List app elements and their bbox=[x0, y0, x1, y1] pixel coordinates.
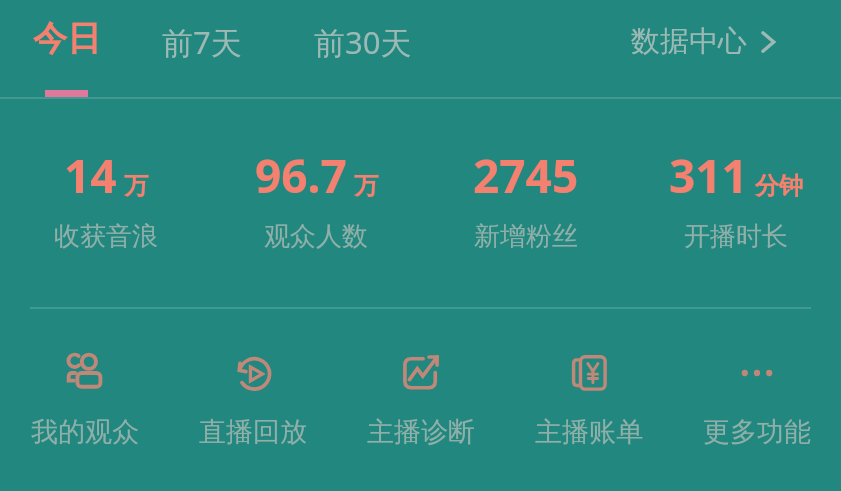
staticText: 观众人数 bbox=[264, 220, 368, 253]
other: 主播账单 bbox=[566, 350, 612, 396]
staticText: 311 bbox=[669, 144, 748, 207]
staticText: 万 bbox=[354, 171, 378, 201]
staticText: 今日 bbox=[33, 17, 101, 60]
button[interactable]: 我的观众 bbox=[0, 347, 169, 452]
staticText: 主播诊断 bbox=[367, 415, 475, 449]
button[interactable]: 前30天 bbox=[309, 17, 417, 67]
staticText: 直播回放 bbox=[199, 415, 307, 449]
staticText: 14 bbox=[64, 144, 117, 207]
staticText: 数据中心 bbox=[631, 23, 747, 60]
staticText: 我的观众 bbox=[31, 415, 139, 449]
staticText: 96.7 bbox=[255, 144, 347, 207]
button[interactable]: 直播回放 bbox=[169, 347, 337, 452]
staticText: 新增粉丝 bbox=[474, 220, 578, 253]
staticText: 万 bbox=[124, 171, 148, 201]
button[interactable]: 14 bbox=[0, 141, 211, 256]
button[interactable]: 主播账单 bbox=[505, 347, 673, 452]
button[interactable]: 前7天 bbox=[157, 17, 247, 67]
staticText: 2745 bbox=[473, 144, 579, 207]
button[interactable]: 311 bbox=[631, 141, 841, 256]
other: 我的观众 bbox=[62, 350, 108, 396]
staticText: 分钟 bbox=[755, 171, 803, 201]
staticText: 主播账单 bbox=[535, 415, 643, 449]
button[interactable]: 今日 bbox=[28, 13, 106, 64]
other: 更多功能 bbox=[734, 350, 780, 396]
staticText: 更多功能 bbox=[703, 415, 811, 449]
button[interactable]: 2745 bbox=[421, 141, 631, 256]
staticText: 开播时长 bbox=[684, 220, 788, 253]
button[interactable]: 主播诊断 bbox=[337, 347, 505, 452]
staticText: 前30天 bbox=[314, 21, 412, 63]
other: 直播回放 bbox=[230, 350, 276, 396]
button[interactable]: 96.7 bbox=[211, 141, 421, 256]
other: 主播诊断 bbox=[398, 350, 444, 396]
button[interactable]: 数据中心 bbox=[625, 19, 782, 64]
staticText: 收获音浪 bbox=[54, 220, 158, 253]
button[interactable]: 更多功能 bbox=[673, 347, 841, 452]
staticText: 前7天 bbox=[162, 21, 242, 63]
